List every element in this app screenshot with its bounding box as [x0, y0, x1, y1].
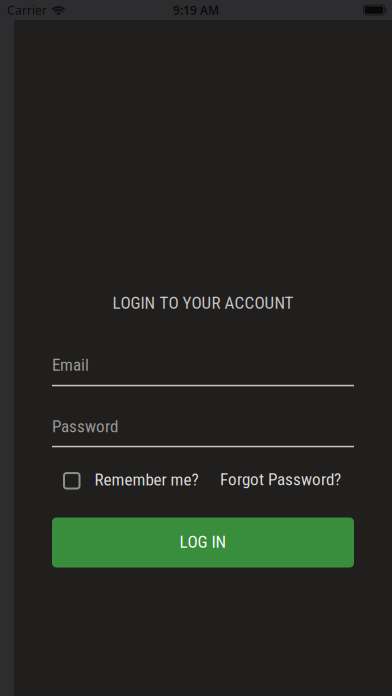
staticText: 9:19 AM: [173, 2, 219, 18]
staticText: LOGIN TO YOUR ACCOUNT: [112, 293, 293, 313]
staticText: Password: [52, 416, 118, 436]
button[interactable]: LOG IN: [52, 517, 354, 567]
staticText: Remember me?: [94, 470, 198, 490]
button[interactable]: Remember me?: [64, 471, 198, 491]
staticText: Email: [52, 355, 89, 375]
staticText: LOG IN: [179, 532, 226, 552]
staticText: Forgot Password?: [220, 469, 341, 489]
staticText: Carrier: [7, 2, 47, 18]
button[interactable]: Forgot Password?: [220, 469, 341, 489]
